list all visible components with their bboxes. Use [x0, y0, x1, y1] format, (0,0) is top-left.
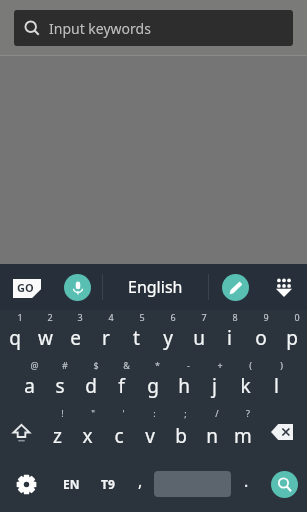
staticText: )	[280, 359, 283, 371]
button[interactable]: 4	[90, 310, 121, 358]
button[interactable]: 6	[152, 310, 183, 358]
staticText: 0	[294, 311, 300, 323]
staticText: p	[286, 325, 298, 351]
staticText: u	[193, 325, 205, 351]
button[interactable]: Search	[261, 458, 307, 510]
button[interactable]: ?	[227, 406, 258, 458]
staticText: 5	[139, 311, 145, 323]
staticText: a	[24, 373, 35, 399]
button[interactable]: 0	[276, 310, 307, 358]
button[interactable]: ,	[126, 458, 154, 510]
button[interactable]: GO keyboard	[0, 264, 52, 310]
staticText: 7	[201, 311, 207, 323]
staticText: 6	[170, 311, 176, 323]
button[interactable]: EN	[52, 458, 90, 510]
button[interactable]: 5	[121, 310, 152, 358]
staticText: h	[178, 373, 190, 399]
button[interactable]: "	[72, 406, 103, 458]
staticText: $	[93, 359, 99, 371]
staticText: 2	[47, 311, 53, 323]
staticText: &	[123, 359, 130, 371]
staticText: 8	[232, 311, 238, 323]
staticText: i	[227, 325, 232, 351]
button[interactable]: 3	[60, 310, 90, 358]
button[interactable]: Backspace	[258, 406, 307, 458]
staticText: GO	[17, 280, 34, 295]
button[interactable]: )	[261, 358, 292, 406]
staticText: l	[274, 373, 279, 399]
button[interactable]: 8	[214, 310, 245, 358]
staticText: o	[255, 325, 267, 351]
staticText: r	[102, 325, 110, 351]
staticText: 1	[17, 311, 23, 323]
staticText: d	[85, 373, 97, 399]
button[interactable]: $	[75, 358, 106, 406]
staticText: e	[70, 325, 81, 351]
button[interactable]: Space	[154, 458, 231, 510]
staticText: (	[249, 359, 252, 371]
staticText: *	[155, 359, 160, 371]
button[interactable]: 2	[30, 310, 60, 358]
button[interactable]: +	[199, 358, 230, 406]
staticText: v	[145, 423, 155, 449]
button[interactable]: Settings	[0, 458, 52, 510]
staticText: q	[9, 325, 21, 351]
staticText: x	[82, 423, 93, 449]
staticText: w	[38, 325, 53, 351]
staticText: t	[133, 325, 140, 351]
staticText: z	[53, 423, 62, 449]
staticText: #	[62, 359, 68, 371]
staticText: @	[30, 359, 39, 371]
button[interactable]: !	[42, 406, 72, 458]
button[interactable]: @	[14, 358, 44, 406]
button[interactable]: 7	[183, 310, 214, 358]
staticText: ?	[246, 407, 250, 419]
button[interactable]: *	[137, 358, 168, 406]
staticText: j	[212, 373, 217, 399]
staticText: 9	[263, 311, 269, 323]
staticText: /	[215, 407, 219, 419]
button[interactable]: T9	[90, 458, 126, 510]
staticText: -	[187, 359, 190, 371]
staticText: +	[217, 359, 223, 371]
staticText: !	[61, 407, 64, 419]
button[interactable]: :	[134, 406, 165, 458]
staticText: '	[122, 407, 125, 419]
staticText: English	[128, 276, 183, 298]
staticText: f	[118, 373, 125, 399]
staticText: 4	[108, 311, 114, 323]
button[interactable]: Hide keyboard	[261, 264, 307, 310]
staticText: Input keywords	[49, 19, 151, 38]
staticText: s	[55, 373, 65, 399]
button[interactable]: Voice input	[52, 264, 102, 310]
staticText: .	[244, 470, 249, 492]
staticText: :	[153, 407, 156, 419]
button[interactable]: #	[44, 358, 75, 406]
button[interactable]: 9	[245, 310, 276, 358]
staticText: b	[175, 423, 187, 449]
staticText: y	[163, 325, 173, 351]
staticText: c	[114, 423, 124, 449]
button[interactable]: English	[103, 264, 208, 310]
button[interactable]: 1	[0, 310, 30, 358]
staticText: m	[234, 423, 252, 449]
staticText: 3	[77, 311, 83, 323]
staticText: T9	[101, 476, 115, 492]
button[interactable]: Handwriting	[209, 264, 261, 310]
staticText: EN	[63, 476, 80, 492]
button[interactable]: '	[103, 406, 134, 458]
button[interactable]: /	[196, 406, 227, 458]
staticText: ;	[184, 407, 187, 419]
staticText: ,	[138, 470, 143, 492]
staticText: n	[206, 423, 218, 449]
button[interactable]: (	[230, 358, 261, 406]
button[interactable]: -	[168, 358, 199, 406]
staticText: g	[147, 373, 159, 399]
button[interactable]: Input keywords	[14, 10, 293, 46]
staticText: "	[91, 407, 95, 419]
button[interactable]: &	[106, 358, 137, 406]
button[interactable]: Shift	[0, 406, 42, 458]
button[interactable]: ;	[165, 406, 196, 458]
button[interactable]: .	[231, 458, 261, 510]
staticText: k	[240, 373, 251, 399]
